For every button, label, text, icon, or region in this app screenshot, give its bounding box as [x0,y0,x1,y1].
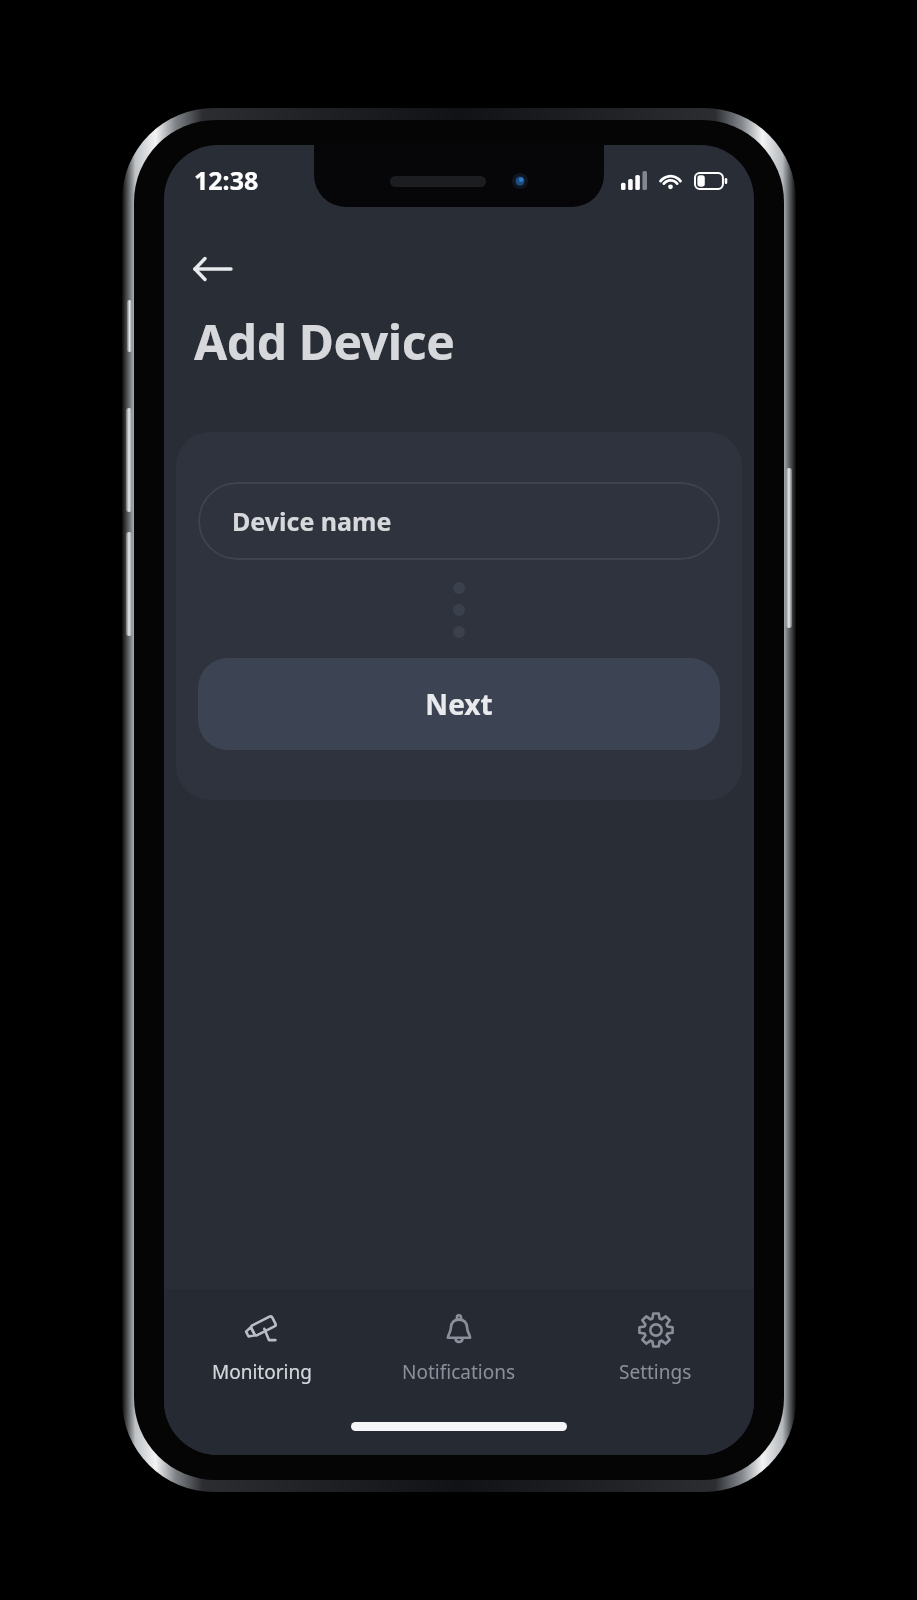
button[interactable]: Settings [557,1299,754,1395]
staticText: Monitoring [212,1359,312,1385]
button[interactable]: Back [194,243,246,295]
staticText: Settings [619,1359,692,1385]
staticText: Notifications [402,1359,516,1385]
button[interactable]: Monitoring [164,1299,360,1395]
button[interactable]: Notifications [360,1299,557,1395]
button[interactable]: Next [198,658,720,750]
staticText: Add Device [194,309,455,374]
staticText: Next [425,685,493,723]
button[interactable]: Device name [198,482,720,560]
staticText: 12:38 [194,163,259,197]
staticText: Device name [232,504,392,538]
